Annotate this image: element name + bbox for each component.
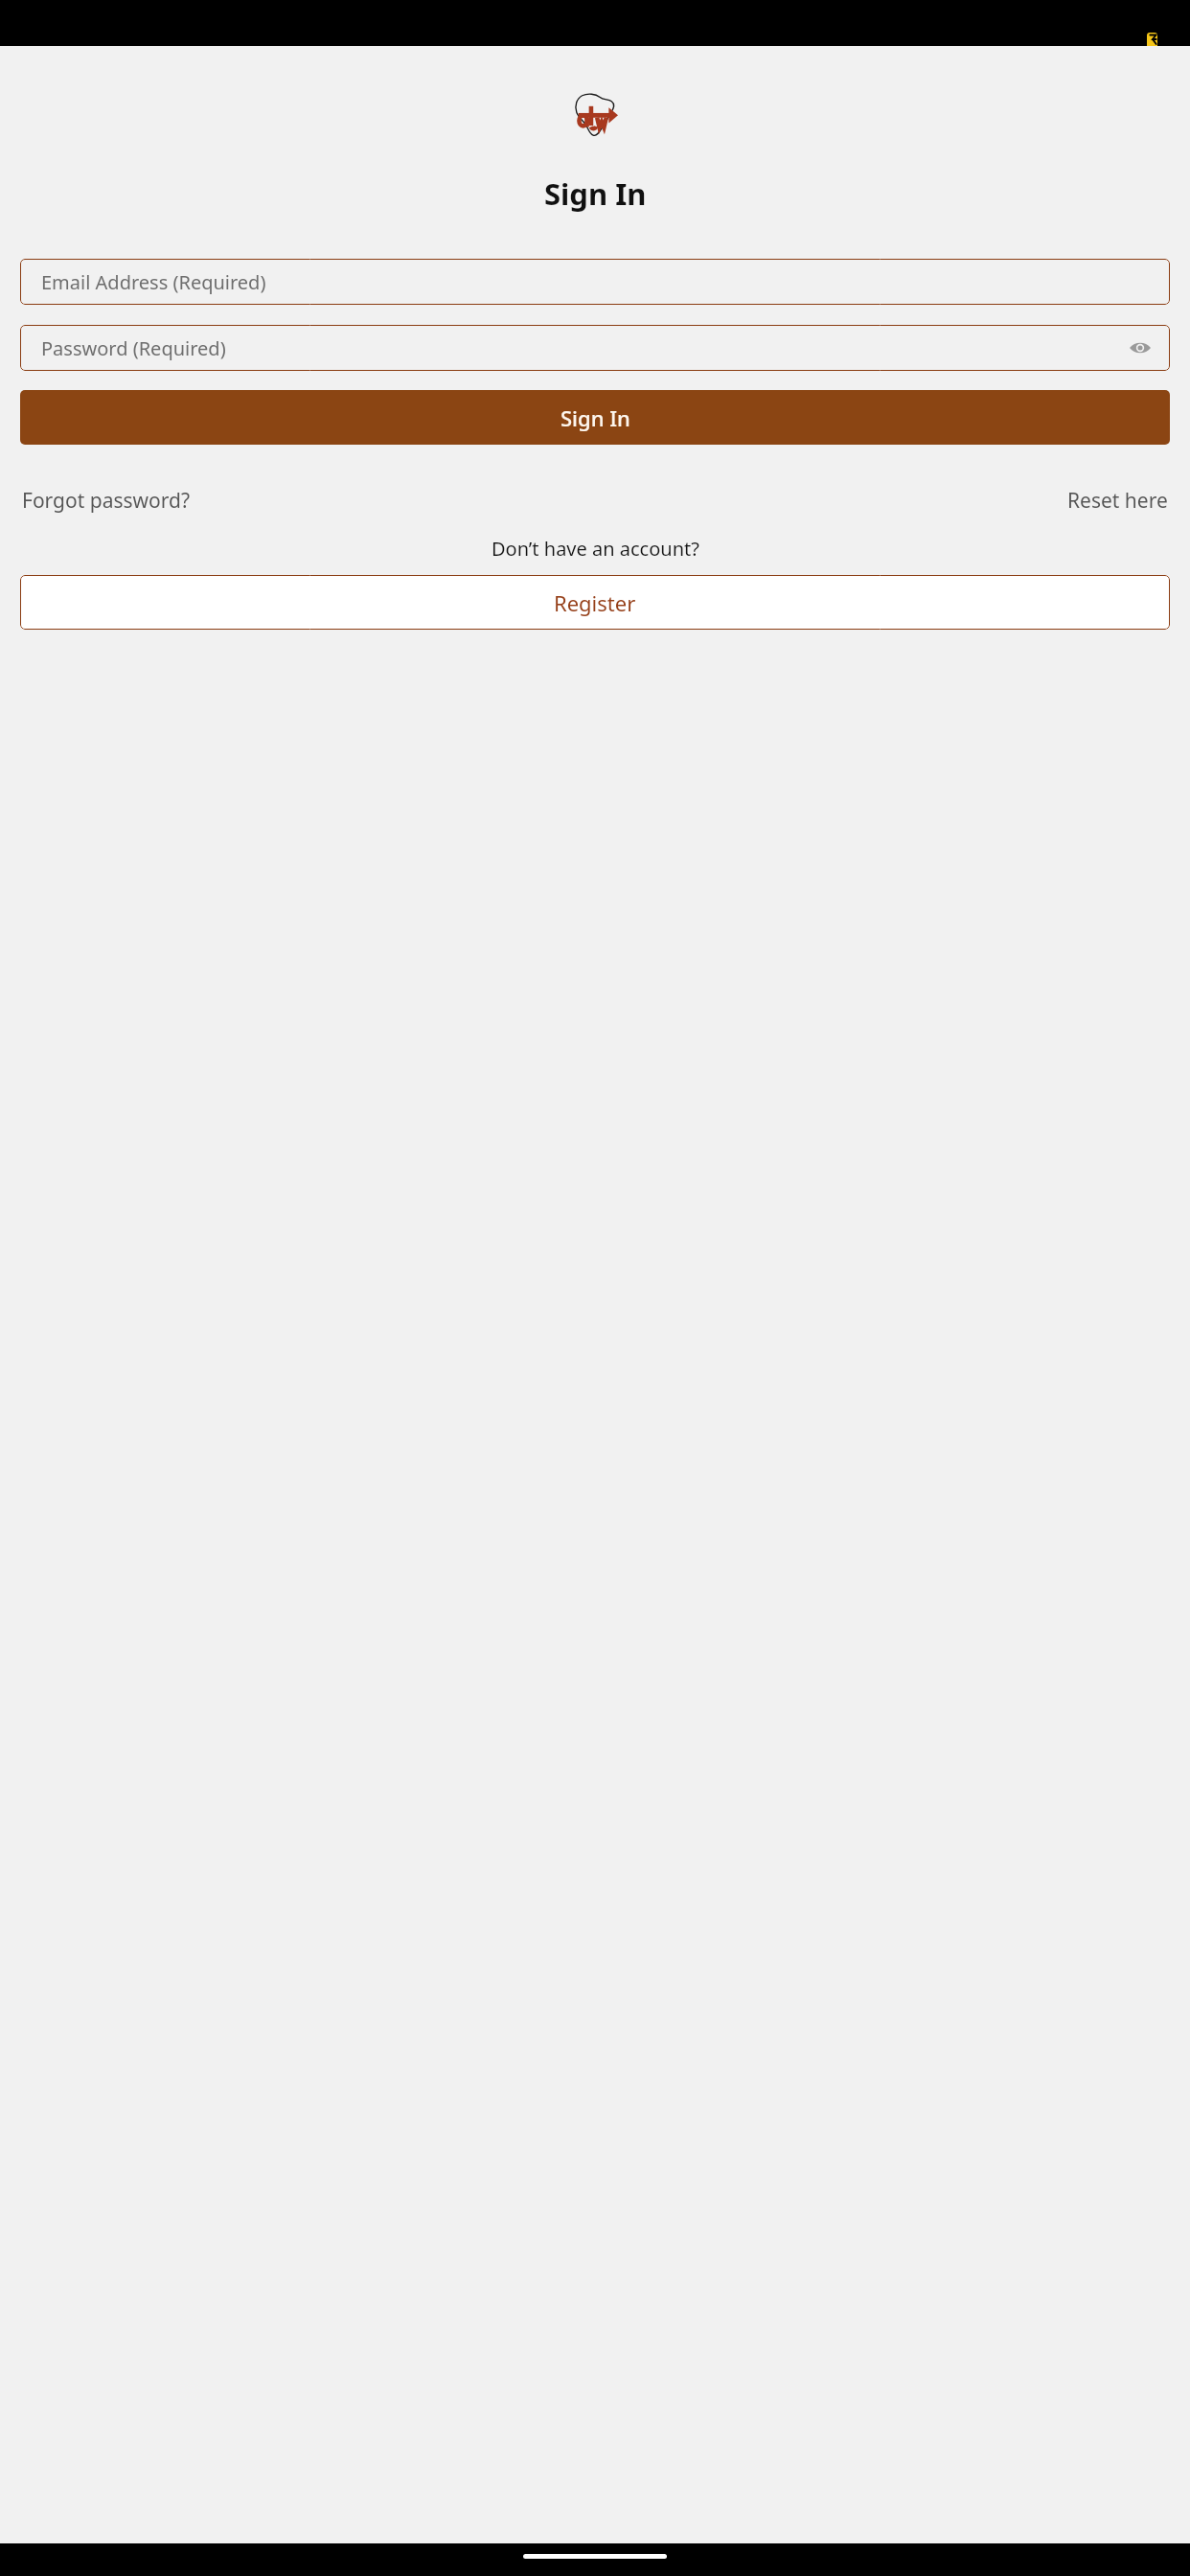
staticText: Sign In xyxy=(544,173,647,214)
button[interactable]: Email Address (Required) xyxy=(20,259,1170,305)
staticText: Sign In xyxy=(561,403,630,432)
button[interactable]: Sign In xyxy=(20,390,1170,445)
staticText: Password (Required) xyxy=(41,335,226,361)
button[interactable]: Reset here xyxy=(1067,487,1168,515)
staticText: Register xyxy=(554,588,636,617)
staticText: Email Address (Required) xyxy=(41,269,266,295)
staticText: Reset here xyxy=(1067,487,1168,515)
staticText: Don’t have an account? xyxy=(492,536,699,562)
button[interactable]: Password (Required) xyxy=(20,325,1170,371)
button[interactable]: Register xyxy=(20,575,1170,630)
button[interactable]: Show password xyxy=(1124,332,1156,364)
button[interactable]: Forgot password? xyxy=(22,487,191,515)
staticText: Forgot password? xyxy=(22,487,191,515)
